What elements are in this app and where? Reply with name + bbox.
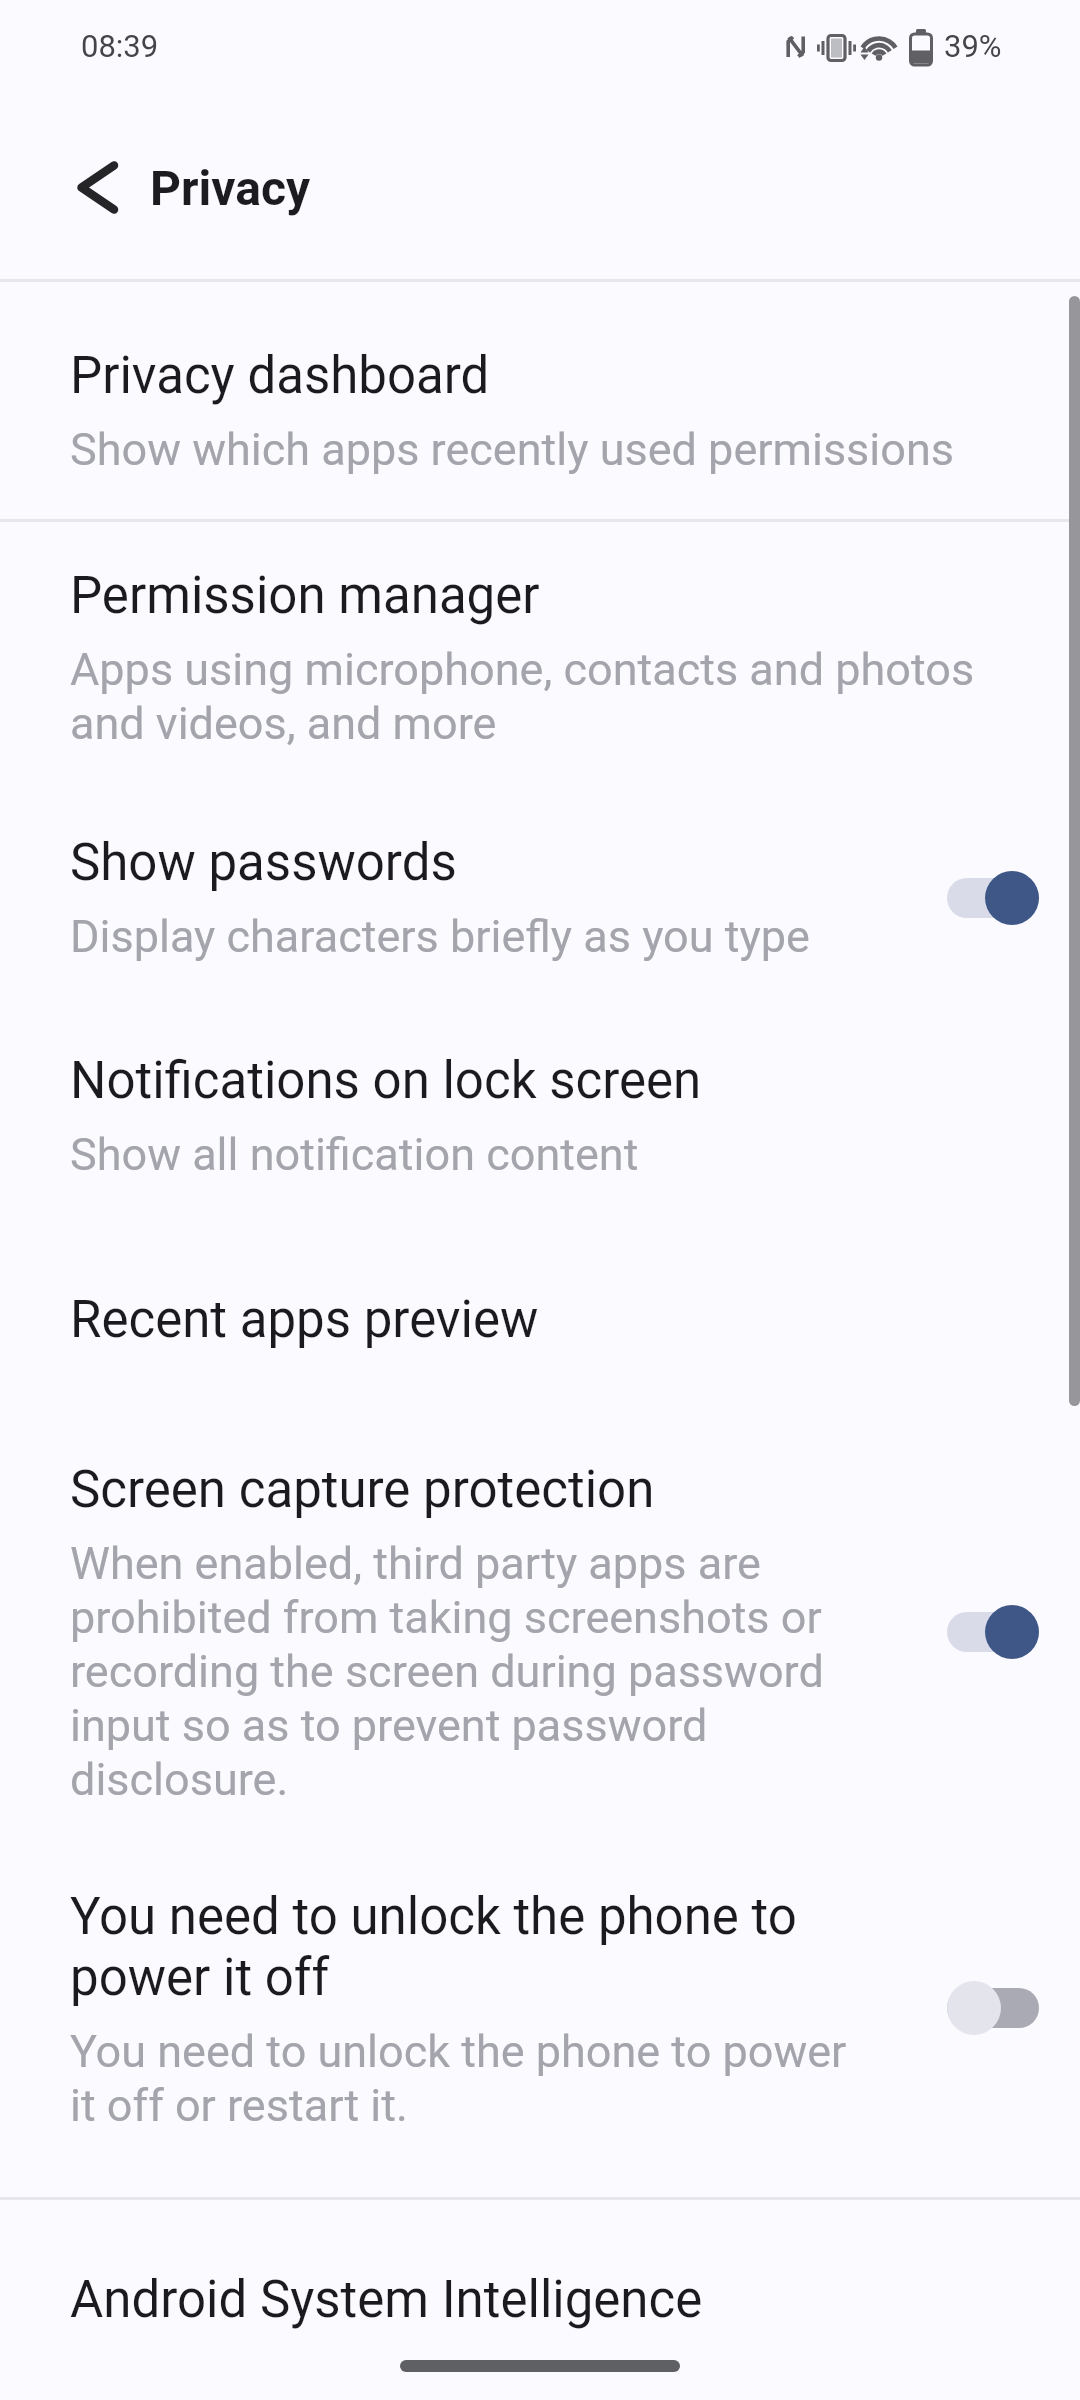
button[interactable]: You need to unlock the phone to power it… xyxy=(0,1887,1080,2143)
button[interactable]: Android System Intelligence xyxy=(0,2270,1080,2390)
button[interactable] xyxy=(400,2360,680,2372)
button[interactable]: Notifications on lock screen xyxy=(0,1051,1080,1223)
staticText: Show passwords xyxy=(70,833,457,893)
staticText: Android System Intelligence xyxy=(70,2270,703,2330)
staticText: 08:39 xyxy=(81,28,159,64)
staticText: You need to unlock the phone to power it… xyxy=(70,2025,847,2132)
staticText: Privacy dashboard xyxy=(70,346,490,406)
staticText: Display characters briefly as you type xyxy=(70,910,810,963)
staticText: When enabled, third party apps are prohi… xyxy=(70,1537,824,1806)
button[interactable] xyxy=(947,1605,1039,1659)
staticText: Apps using microphone, contacts and phot… xyxy=(70,643,975,750)
staticText: Permission manager xyxy=(70,566,540,626)
button[interactable]: Permission manager xyxy=(0,566,1080,792)
button[interactable]: Recent apps preview xyxy=(0,1290,1080,1410)
staticText: Screen capture protection xyxy=(70,1460,655,1520)
button[interactable] xyxy=(58,146,138,226)
staticText: Show all notification content xyxy=(70,1128,639,1181)
button[interactable] xyxy=(947,1981,1039,2035)
button[interactable]: Privacy dashboard xyxy=(0,346,1080,518)
button[interactable]: Show passwords xyxy=(0,833,1080,1005)
button[interactable]: Screen capture protection xyxy=(0,1460,1080,1848)
staticText: Privacy xyxy=(150,160,311,216)
staticText: Show which apps recently used permission… xyxy=(70,423,955,476)
staticText: Notifications on lock screen xyxy=(70,1051,702,1111)
staticText: You need to unlock the phone to power it… xyxy=(70,1887,797,2008)
staticText: 39% xyxy=(944,28,1002,64)
button[interactable] xyxy=(947,871,1039,925)
staticText: Recent apps preview xyxy=(70,1290,539,1350)
